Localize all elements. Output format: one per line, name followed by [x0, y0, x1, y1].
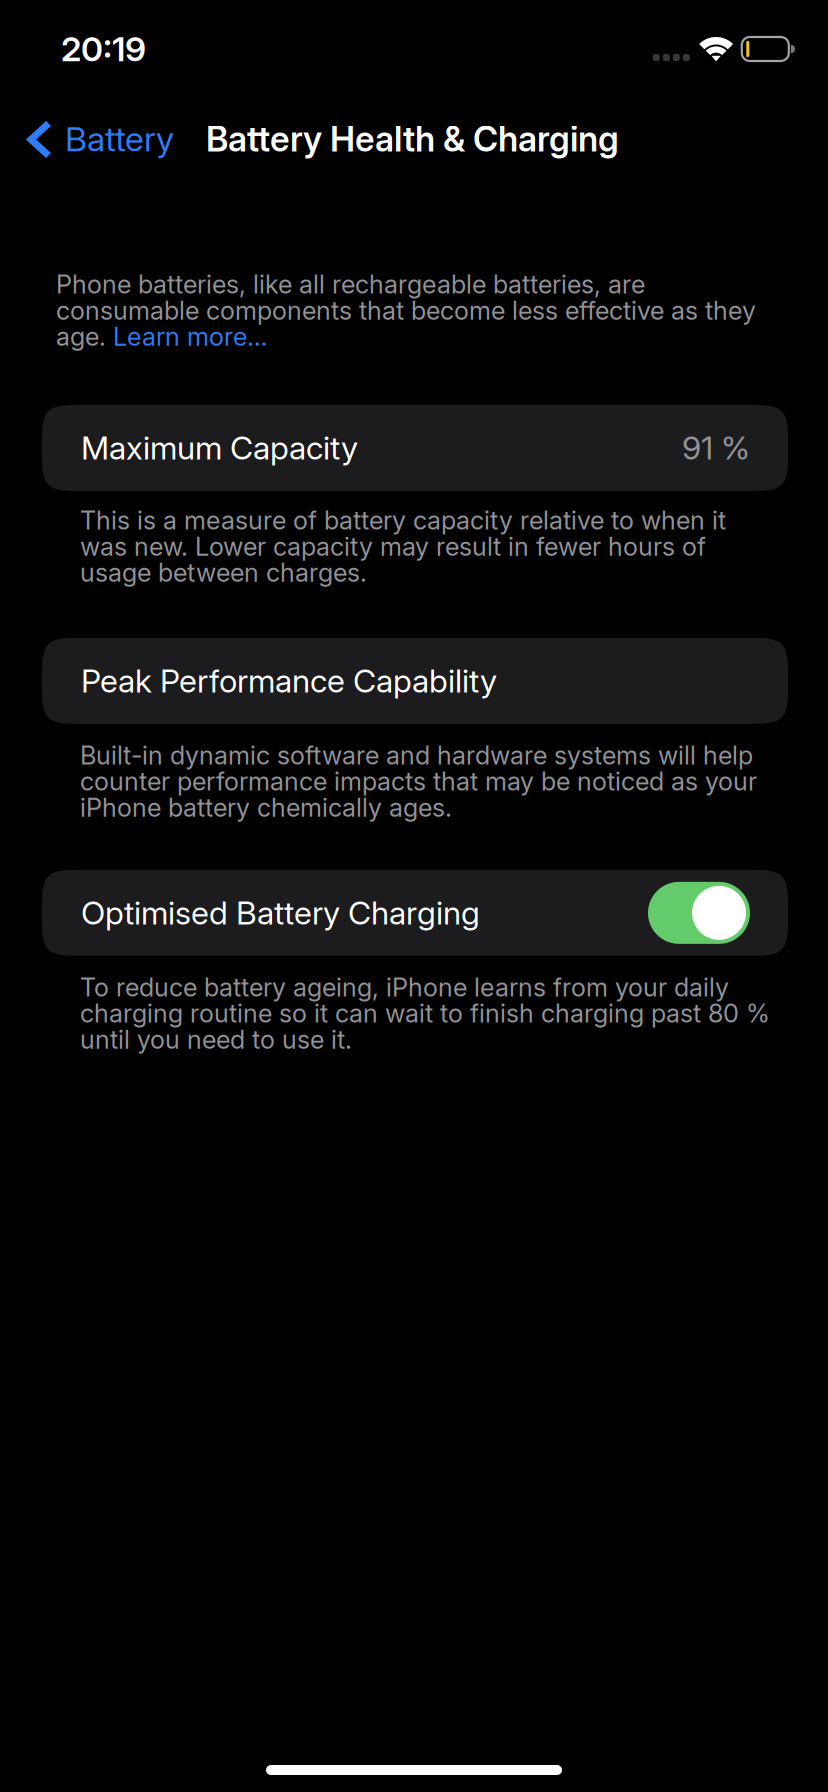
staticText: Battery Health & Charging: [206, 118, 619, 160]
staticText: Optimised Battery Charging: [81, 893, 480, 932]
staticText: To reduce battery ageing, iPhone learns …: [80, 972, 770, 1055]
staticText: Peak Performance Capability: [81, 661, 497, 700]
staticText: 91 %: [682, 429, 750, 467]
button[interactable]: Maximum Capacity: [0, 405, 828, 491]
button[interactable]: Peak Performance Capability: [0, 638, 828, 724]
button[interactable]: Optimised Battery Charging: [0, 870, 828, 956]
staticText: Phone batteries, like all rechargeable b…: [56, 269, 756, 352]
button[interactable]: Battery: [0, 96, 190, 182]
staticText: This is a measure of battery capacity re…: [80, 505, 726, 588]
staticText: Maximum Capacity: [81, 429, 358, 467]
staticText: Battery: [65, 118, 174, 159]
staticText: Built-in dynamic software and hardware s…: [80, 740, 757, 823]
staticText: 20:19: [61, 28, 146, 69]
